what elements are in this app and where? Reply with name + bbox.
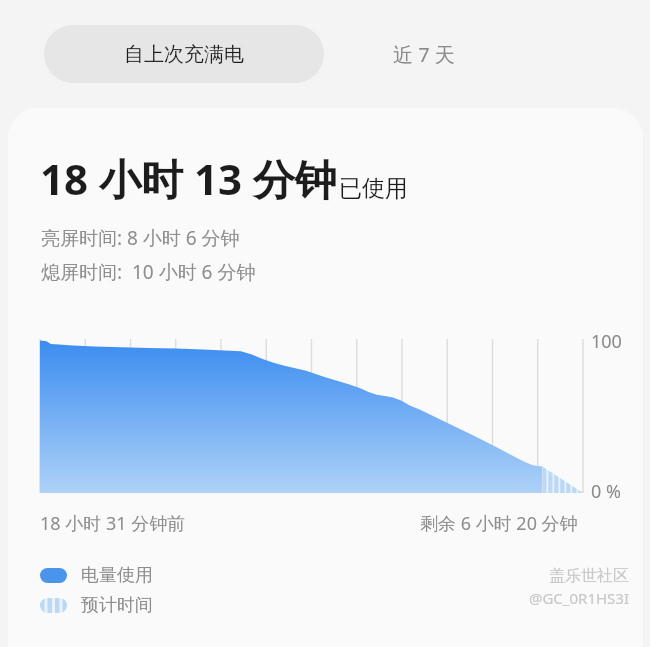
staticText: 盖乐世社区 bbox=[549, 566, 629, 586]
button[interactable]: 近 7 天 bbox=[324, 25, 524, 83]
staticText: 18 小时 31 分钟前 bbox=[40, 511, 186, 536]
staticText: 0 % bbox=[591, 479, 621, 504]
staticText: 电量使用 bbox=[81, 564, 153, 587]
staticText: 100 bbox=[591, 329, 622, 354]
staticText: 18 小时 13 分钟 bbox=[40, 150, 337, 207]
staticText: 近 7 天 bbox=[393, 41, 455, 68]
staticText: 自上次充满电 bbox=[124, 42, 244, 67]
staticText: 亮屏时间: 8 小时 6 分钟 bbox=[41, 225, 240, 251]
staticText: 预计时间 bbox=[81, 594, 153, 617]
staticText: 已使用 bbox=[339, 174, 408, 203]
staticText: 剩余 6 小时 20 分钟 bbox=[420, 511, 578, 536]
staticText: 熄屏时间: 10 小时 6 分钟 bbox=[41, 259, 256, 285]
button[interactable]: 自上次充满电 bbox=[44, 25, 324, 83]
staticText: @GC_0R1HS3I bbox=[528, 588, 629, 608]
